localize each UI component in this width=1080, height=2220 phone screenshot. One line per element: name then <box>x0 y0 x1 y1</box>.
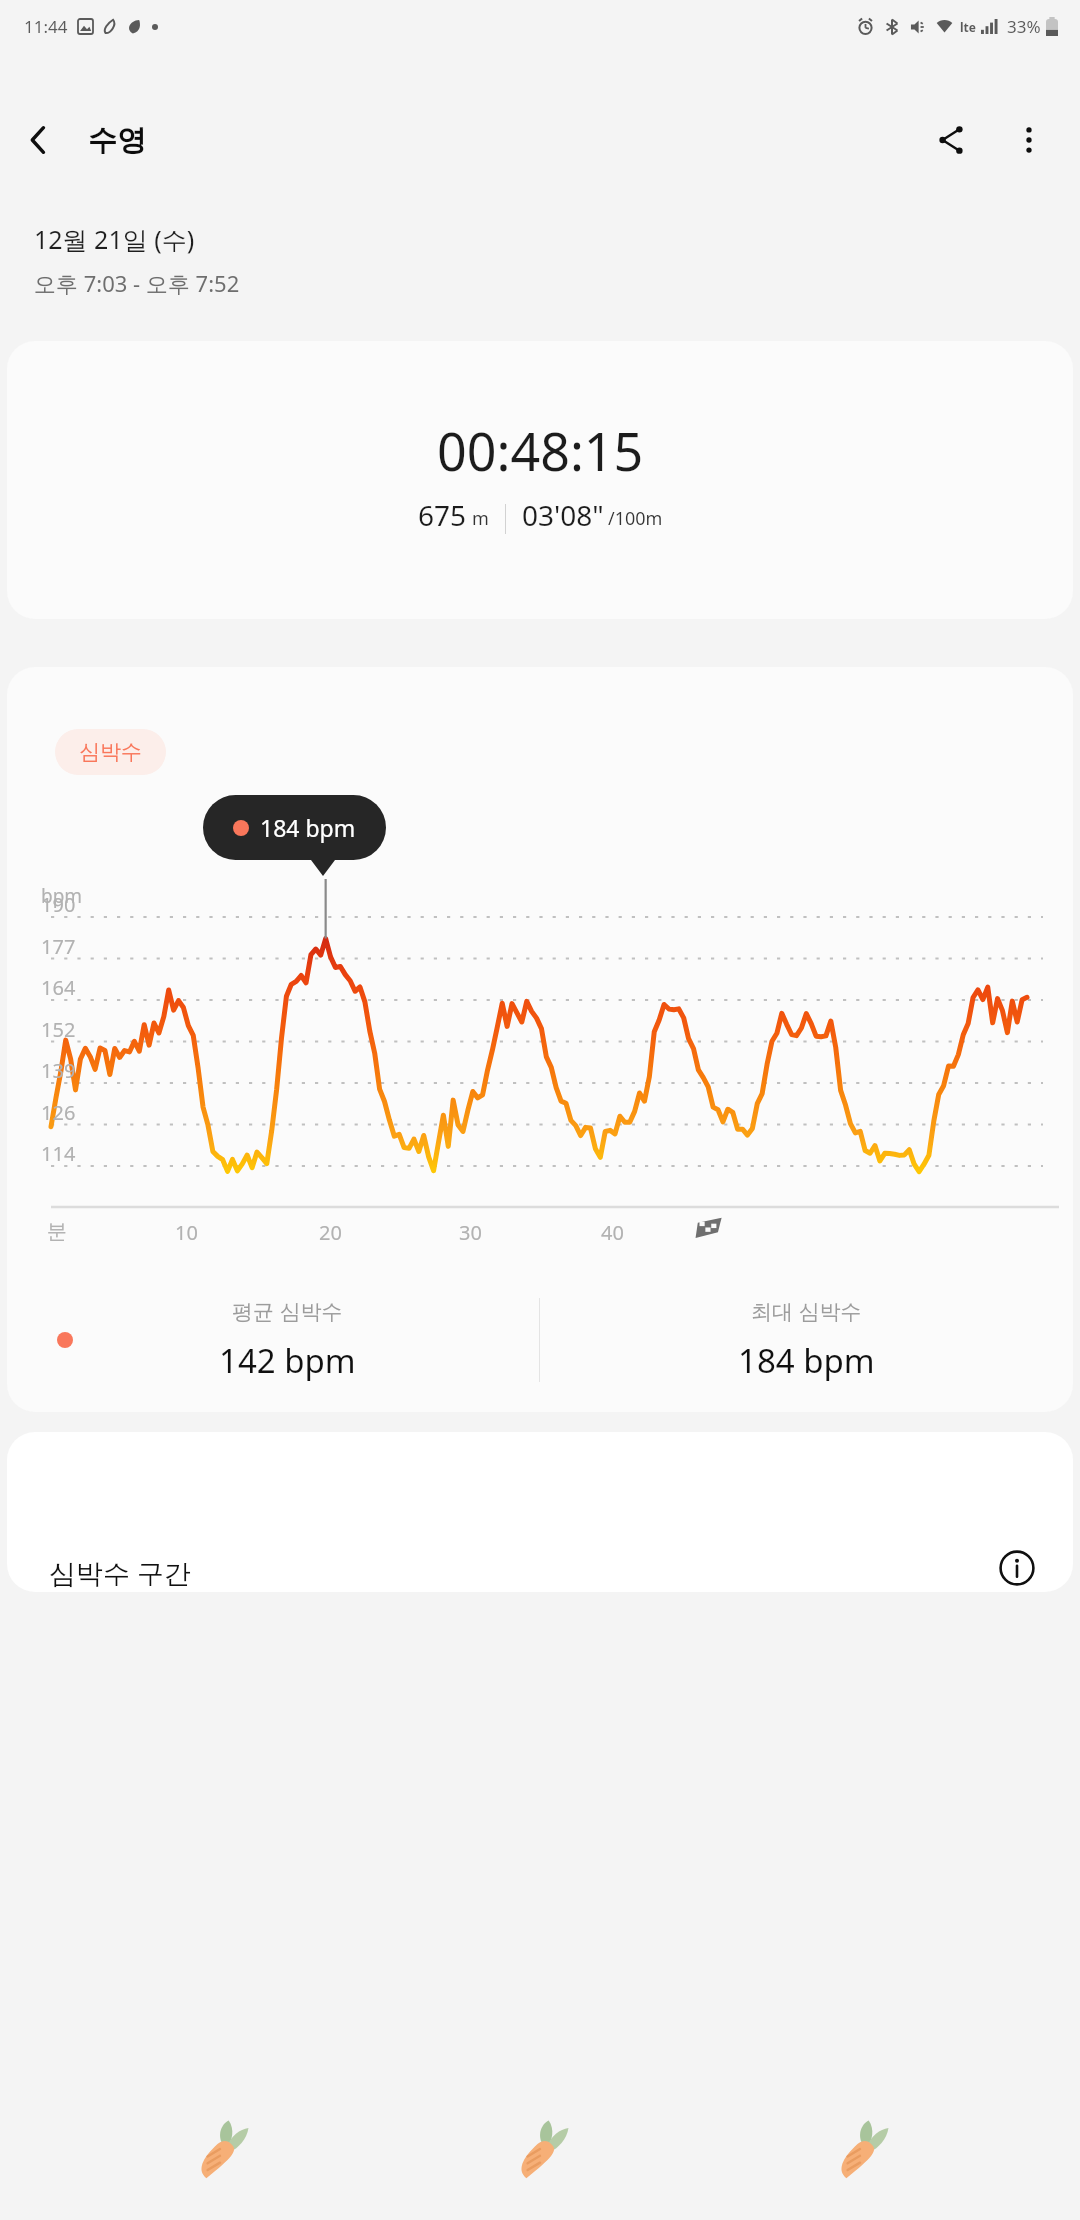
staticText: 114 <box>41 1140 76 1167</box>
button[interactable]: 00:48:15 <box>7 341 1073 619</box>
staticText: 184 bpm <box>738 1338 875 1383</box>
staticText: 139 <box>41 1057 76 1084</box>
button[interactable]: Back <box>0 101 78 179</box>
button[interactable]: Navigation item 3 <box>760 2078 960 2220</box>
staticText: 152 <box>41 1016 76 1043</box>
staticText: 30 <box>459 1219 482 1246</box>
staticText: 00:48:15 <box>437 415 644 486</box>
button[interactable]: Share <box>912 101 990 179</box>
button[interactable]: Navigation item 2 <box>440 2078 640 2220</box>
staticText: lte <box>960 19 976 35</box>
button[interactable]: 평균 심박수 <box>7 1267 539 1412</box>
staticText: 164 <box>41 974 76 1001</box>
staticText: 심박수 구간 <box>49 1554 192 1591</box>
staticText: 142 bpm <box>219 1338 356 1383</box>
staticText: 190 <box>41 891 76 918</box>
staticText: 12월 21일 (수) <box>34 222 195 256</box>
staticText: 33% <box>1007 15 1041 38</box>
staticText: 126 <box>41 1099 76 1126</box>
staticText: 11:44 <box>24 15 68 38</box>
staticText: 10 <box>175 1219 198 1246</box>
button[interactable]: Navigation item 1 <box>120 2078 320 2220</box>
staticText: 675 <box>418 496 467 534</box>
button[interactable]: 심박수 <box>55 729 166 775</box>
staticText: 수영 <box>88 122 146 159</box>
staticText: 40 <box>601 1219 624 1246</box>
staticText: 분 <box>47 1219 67 1244</box>
staticText: 최대 심박수 <box>751 1297 862 1326</box>
staticText: 평균 심박수 <box>232 1297 343 1326</box>
staticText: 오후 7:03 - 오후 7:52 <box>34 268 240 298</box>
staticText: 177 <box>41 933 76 960</box>
other: Finish <box>695 1215 723 1243</box>
staticText: bpm <box>41 883 83 909</box>
staticText: 03'08" <box>522 496 604 534</box>
staticText: 184 bpm <box>260 812 356 843</box>
button[interactable]: 심박수 구간 <box>7 1432 1073 1592</box>
staticText: /100m <box>608 506 663 531</box>
button[interactable]: More options <box>990 101 1068 179</box>
staticText: 20 <box>319 1219 342 1246</box>
staticText: m <box>472 506 489 531</box>
staticText: 심박수 <box>79 739 142 765</box>
button[interactable]: 최대 심박수 <box>540 1267 1073 1412</box>
